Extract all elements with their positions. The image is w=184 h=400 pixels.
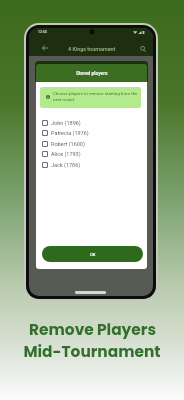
staticText: Patrecia (1976) bbox=[51, 130, 89, 136]
button[interactable]: Patrecia (1976) bbox=[36, 127, 147, 138]
staticText: Mid-Tournament bbox=[23, 341, 161, 363]
staticText: 12:54 bbox=[38, 30, 47, 34]
button[interactable]: Search bbox=[138, 44, 148, 54]
staticText: Stored players bbox=[76, 70, 108, 76]
staticText: OK bbox=[90, 252, 96, 257]
button[interactable]: Alice (1793) bbox=[36, 148, 147, 159]
button[interactable]: John (1896) bbox=[36, 117, 147, 128]
staticText: Remove Players bbox=[29, 319, 156, 341]
button[interactable]: OK bbox=[42, 246, 143, 262]
staticText: Alice (1793) bbox=[51, 151, 81, 157]
staticText: Choose players to remove starting from t… bbox=[53, 91, 139, 102]
staticText: John (1896) bbox=[51, 120, 81, 126]
button[interactable]: Back bbox=[40, 43, 50, 53]
staticText: Robert (1600) bbox=[51, 141, 85, 147]
button[interactable]: Jack (1786) bbox=[36, 159, 147, 170]
staticText: Jack (1786) bbox=[51, 162, 81, 168]
staticText: 4 Kings tournament bbox=[68, 46, 116, 52]
button[interactable]: Robert (1600) bbox=[36, 138, 147, 149]
